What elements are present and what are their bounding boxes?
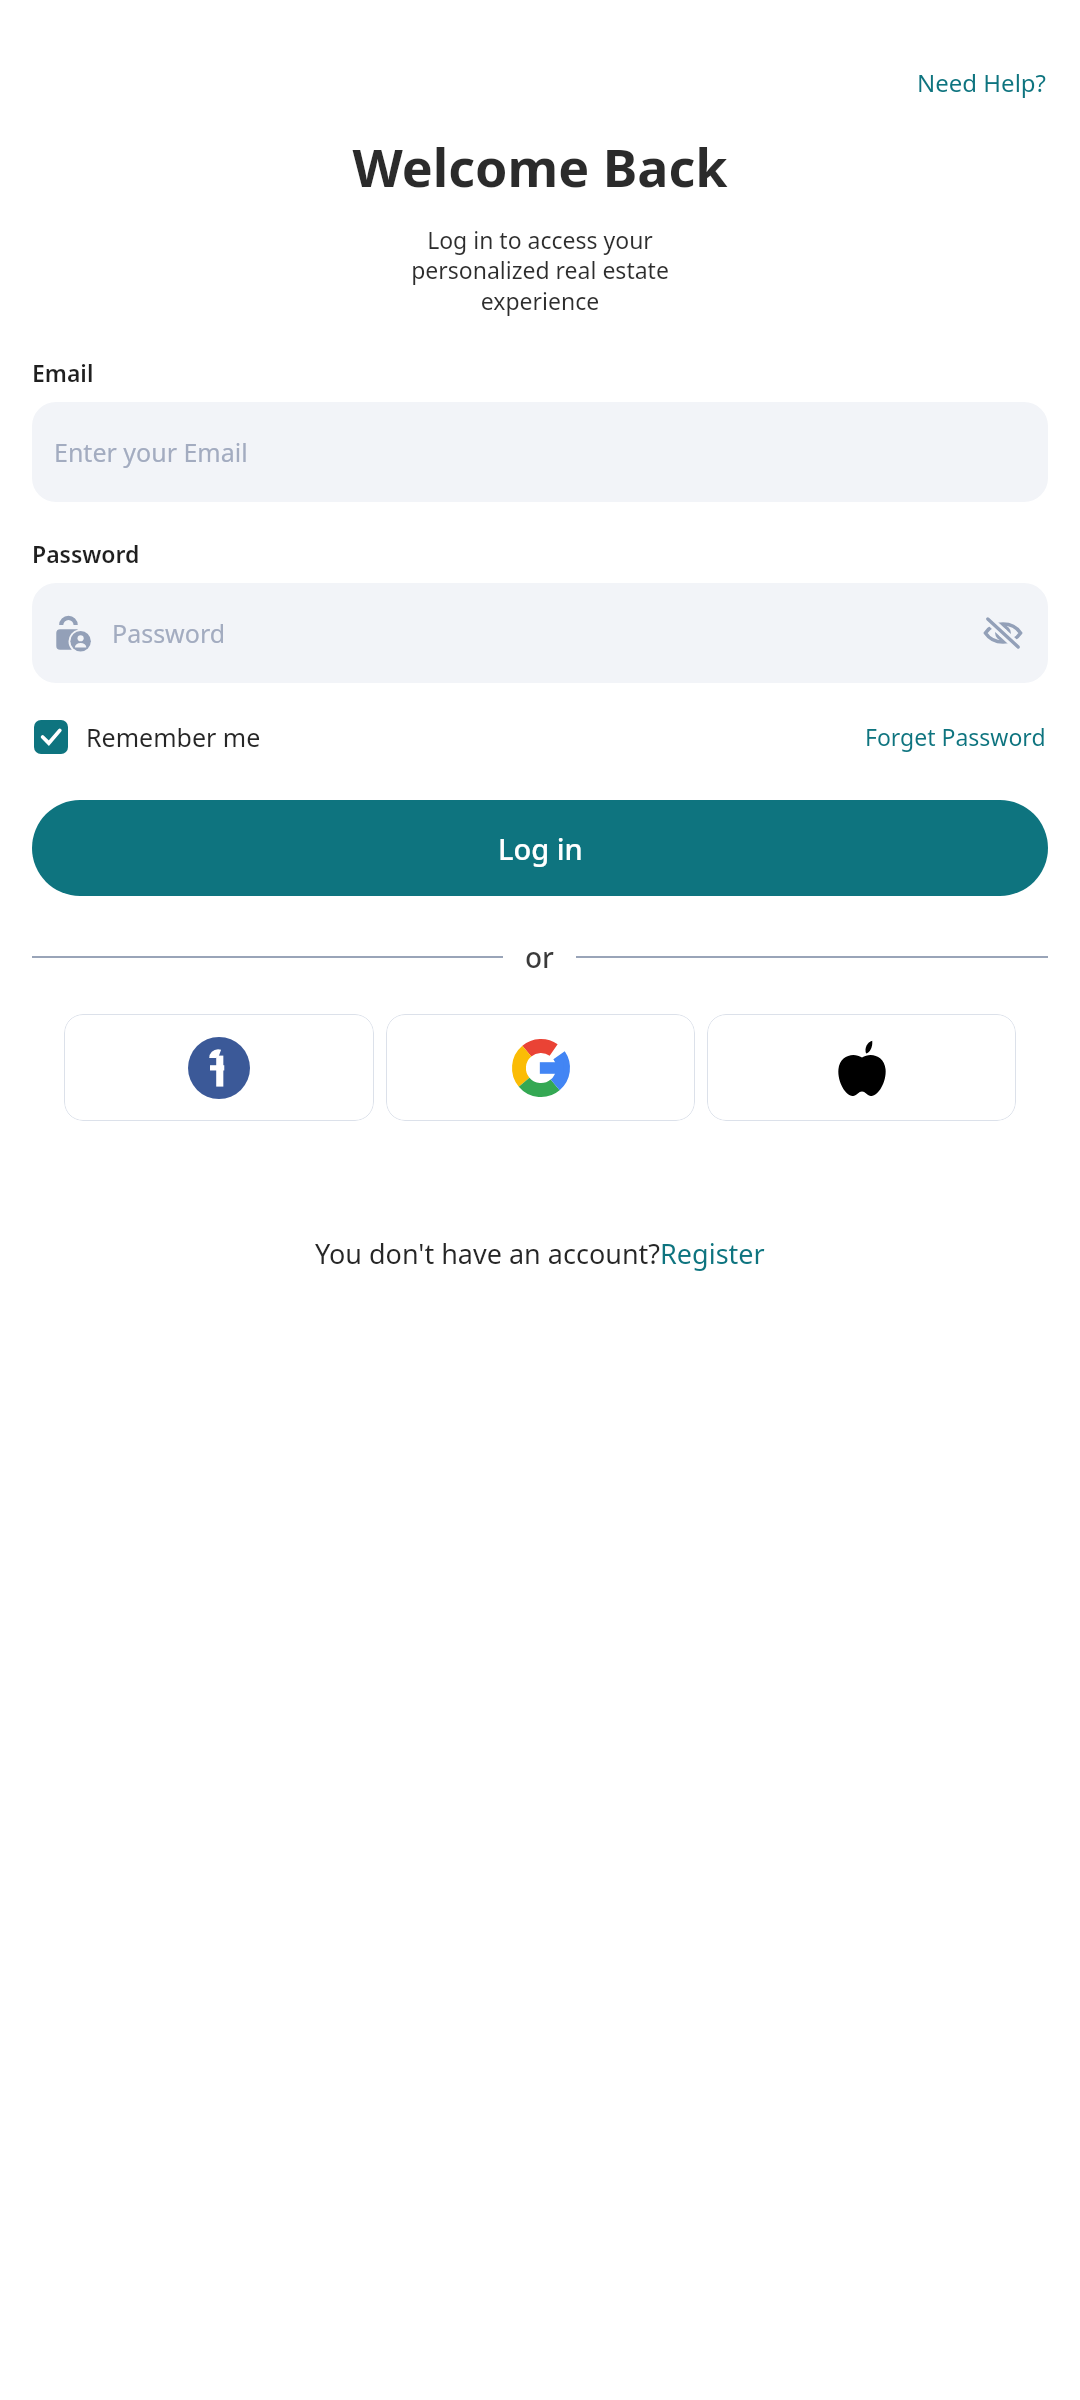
button[interactable]: Need Help? xyxy=(911,62,1052,103)
staticText: Need Help? xyxy=(917,66,1046,99)
button[interactable]: Sign in with Google xyxy=(386,1014,695,1121)
staticText: Log in to access your personalized real … xyxy=(0,224,1080,317)
staticText: Enter your Email xyxy=(54,435,248,469)
staticText: Email xyxy=(32,357,94,388)
button[interactable]: Log in xyxy=(32,800,1048,896)
staticText: or xyxy=(525,938,554,976)
button[interactable]: Enter your Email xyxy=(32,402,1048,502)
staticText: Remember me xyxy=(86,720,261,754)
button[interactable]: Sign in with Facebook xyxy=(64,1014,374,1121)
button[interactable]: Show password xyxy=(980,610,1026,656)
button[interactable]: Sign in with Apple xyxy=(707,1014,1016,1121)
staticText: Password xyxy=(32,538,140,569)
button[interactable]: Password xyxy=(32,583,1048,683)
staticText: Forget Password xyxy=(865,721,1046,752)
staticText: Password xyxy=(112,616,226,650)
button[interactable]: You don't have an account?Register xyxy=(311,1231,769,1276)
staticText: Welcome Back xyxy=(0,131,1080,202)
staticText: Log in xyxy=(498,829,583,868)
button[interactable]: Remember me xyxy=(32,716,263,758)
button[interactable]: Forget Password xyxy=(863,715,1048,758)
staticText: You don't have an account?Register xyxy=(315,1235,765,1272)
